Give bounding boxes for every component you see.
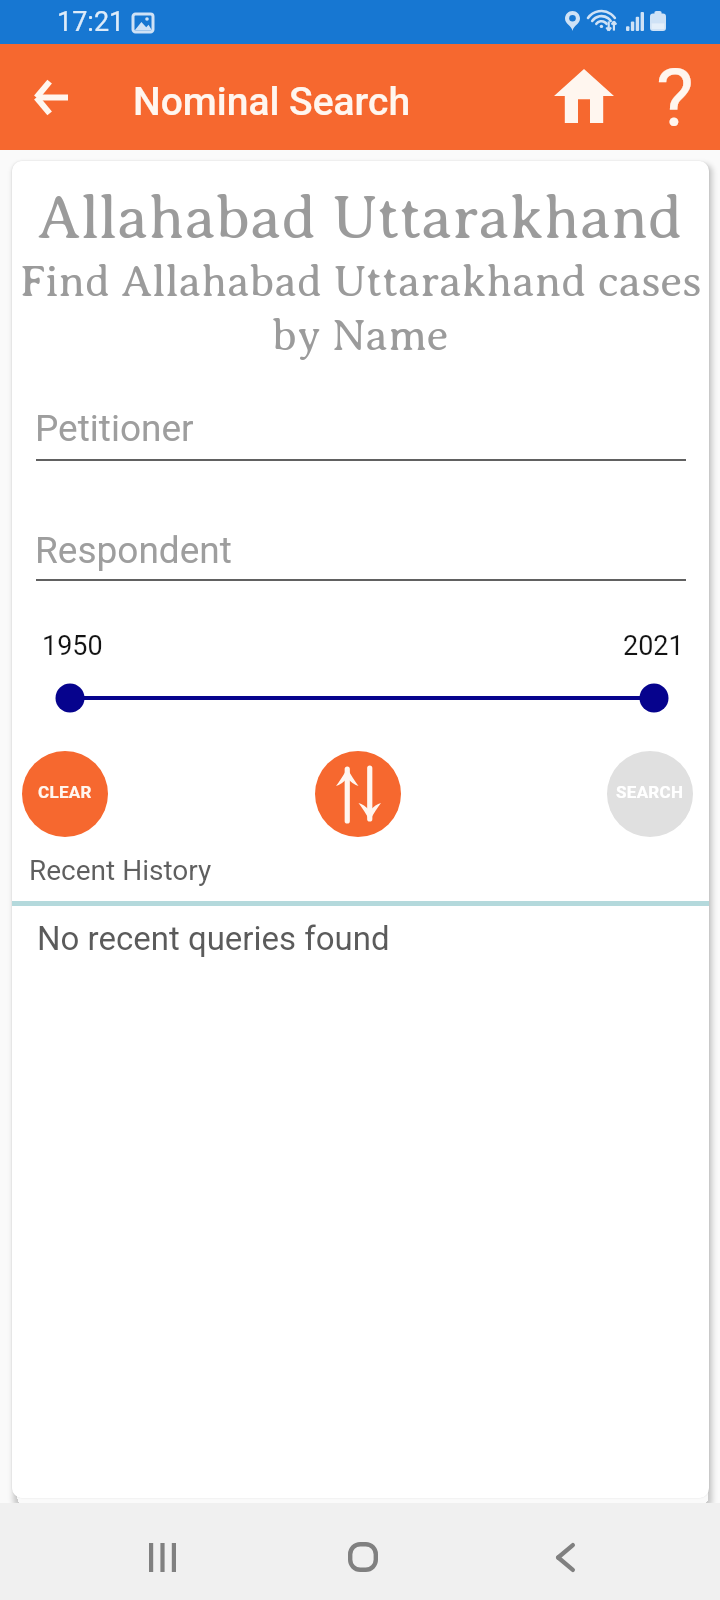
staticText: CLEAR — [38, 782, 92, 802]
button[interactable]: CLEAR — [22, 751, 108, 837]
staticText: Find Allahabad Uttarakhand cases by Name — [12, 257, 709, 360]
staticText: ? — [656, 52, 694, 146]
button[interactable]: Home — [548, 60, 620, 132]
staticText: SEARCH — [616, 782, 684, 802]
staticText: 1950 — [42, 630, 103, 662]
button[interactable]: SEARCH — [607, 751, 693, 837]
staticText: Respondent — [35, 529, 232, 572]
button[interactable]: Home — [315, 1511, 411, 1600]
staticText: Recent History — [29, 854, 212, 887]
button[interactable]: Help — [643, 48, 707, 152]
staticText: 2021 — [623, 630, 684, 662]
staticText: Nominal Search — [133, 79, 411, 125]
button[interactable]: Back — [19, 65, 83, 129]
button[interactable]: Back — [517, 1511, 613, 1600]
button[interactable]: Swap order — [315, 751, 401, 837]
staticText: 17:21 — [57, 6, 125, 38]
staticText: Allahabad Uttarakhand — [12, 184, 709, 252]
staticText: Petitioner — [35, 407, 194, 450]
staticText: No recent queries found — [37, 919, 390, 958]
button[interactable]: Recent apps — [114, 1511, 210, 1600]
